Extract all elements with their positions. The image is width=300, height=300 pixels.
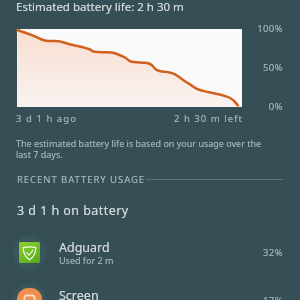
staticText: 17% (263, 294, 283, 300)
button[interactable]: Screen (0, 278, 300, 300)
staticText: 3 d 1 h ago (16, 112, 77, 125)
staticText: Used for 2 m (59, 254, 114, 266)
staticText: Estimated battery life: 2 h 30 m (16, 0, 184, 15)
staticText: 32% (263, 246, 283, 259)
button[interactable]: Adguard (0, 230, 300, 274)
staticText: 3 d 1 h on battery (17, 202, 129, 219)
staticText: 50% (183, 61, 283, 74)
staticText: 0% (183, 100, 283, 113)
staticText: Adguard (59, 239, 110, 256)
staticText: 2 h 30 m left (142, 112, 243, 125)
staticText: RECENT BATTERY USAGE (17, 173, 146, 186)
staticText: 100% (183, 22, 283, 35)
staticText: The estimated battery life is based on y… (16, 137, 274, 161)
staticText: Screen (59, 287, 99, 300)
